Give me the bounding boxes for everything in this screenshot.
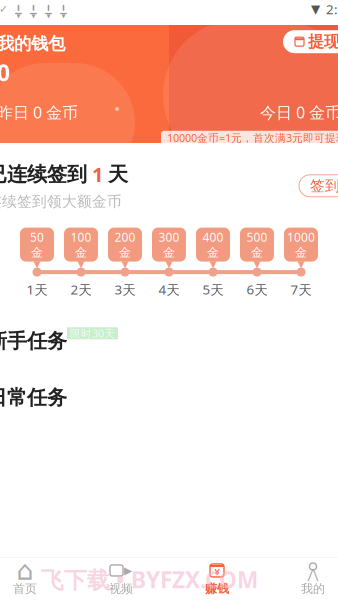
staticText: ▼ — [121, 259, 128, 269]
staticText: 首页 — [13, 581, 37, 596]
staticText: ▼ — [253, 259, 260, 269]
staticText: ▶ — [124, 564, 132, 576]
staticText: 10000金币=1元，首次满3元即可提现 — [167, 131, 338, 145]
staticText: ✓ — [0, 3, 8, 15]
staticText: 5天 — [202, 281, 223, 298]
staticText: ▼ — [165, 259, 172, 269]
staticText: 2天 — [70, 281, 91, 298]
staticText: 赚钱 — [205, 581, 229, 596]
staticText: 金 — [251, 245, 263, 260]
staticText: 限时30天 — [70, 326, 115, 340]
staticText: ⋀ — [307, 566, 318, 581]
staticText: 500 — [246, 229, 267, 245]
staticText: 金 — [295, 245, 307, 260]
staticText: 200 — [114, 229, 135, 245]
staticText: ▼ — [77, 259, 84, 269]
staticText: 金 — [75, 245, 87, 260]
button[interactable]: ⋀ — [265, 558, 338, 600]
staticText: 新手任务 — [0, 329, 67, 353]
staticText: 4天 — [158, 281, 179, 298]
staticText: 0 — [0, 57, 10, 88]
staticText: ▾ — [61, 11, 65, 20]
staticText: 1000 — [287, 229, 315, 245]
staticText: ¥ — [214, 565, 219, 578]
staticText: 2:29 — [326, 0, 338, 18]
staticText: 提现 — [308, 32, 338, 52]
staticText: 金 — [31, 245, 43, 260]
staticText: 金 — [119, 245, 131, 260]
staticText: ▾ — [46, 11, 50, 20]
staticText: 我的 — [301, 581, 325, 596]
staticText: 已连续签到 — [0, 162, 87, 187]
staticText: 昨日 0 金币 — [0, 102, 78, 123]
button[interactable]: ⌂ — [0, 558, 73, 600]
staticText: ⌂ — [16, 555, 33, 586]
staticText: 今日 0 金币 — [260, 102, 338, 123]
button[interactable]: ▶ — [73, 558, 169, 600]
staticText: 签到 — [310, 177, 338, 195]
staticText: 连续签到领大额金币 — [0, 193, 122, 211]
staticText: 1天 — [26, 281, 47, 298]
button[interactable]: ¥ — [169, 558, 265, 600]
staticText: 金 — [163, 245, 175, 260]
staticText: 我的钱包 — [0, 33, 65, 54]
button[interactable]: 提现 — [283, 30, 338, 53]
staticText: ▼ — [297, 259, 304, 269]
staticText: 金 — [207, 245, 219, 260]
staticText: 1 — [87, 161, 108, 188]
staticText: ▼ — [209, 259, 216, 269]
staticText: 天 — [108, 162, 128, 187]
staticText: 3天 — [114, 281, 135, 298]
staticText: 日常任务 — [0, 385, 67, 410]
staticText: 6天 — [246, 281, 267, 298]
button[interactable]: 签到 — [299, 175, 338, 197]
staticText: 飞下载 • BYFZX.COM — [41, 564, 258, 594]
staticText: 50 — [30, 229, 44, 245]
staticText: ▼ — [311, 2, 320, 16]
staticText: 100 — [70, 229, 91, 245]
staticText: 视频 — [109, 581, 133, 596]
staticText: 7天 — [290, 281, 311, 298]
staticText: ▼ — [33, 259, 40, 269]
staticText: 400 — [202, 229, 223, 245]
staticText: ▾ — [31, 11, 35, 20]
staticText: 300 — [158, 229, 179, 245]
staticText: ▾ — [16, 11, 20, 20]
